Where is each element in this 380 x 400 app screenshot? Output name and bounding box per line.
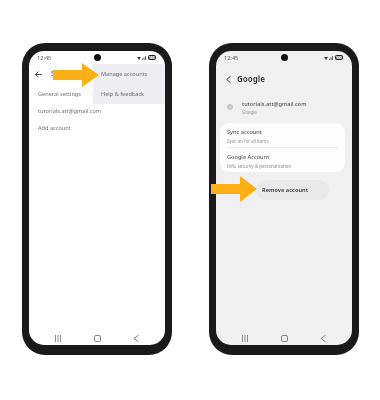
button[interactable]: Recent apps xyxy=(235,332,255,345)
staticText: Remove account xyxy=(262,186,309,194)
staticText: 12:45 xyxy=(37,54,52,62)
button[interactable]: Google Account xyxy=(220,148,345,172)
staticText: 12:45 xyxy=(224,54,239,62)
staticText: General settings xyxy=(38,90,81,98)
staticText: Sync account xyxy=(227,128,263,136)
staticText: Add account xyxy=(38,124,71,132)
staticText: Manage accounts xyxy=(101,70,148,78)
staticText: Info, security & personalisation xyxy=(227,163,292,169)
button[interactable]: Navigate up xyxy=(32,68,44,80)
button[interactable]: Remove account xyxy=(256,180,329,200)
staticText: Google Account xyxy=(227,153,270,161)
button[interactable]: Manage accounts xyxy=(93,64,165,84)
staticText: 100 xyxy=(336,56,342,60)
staticText: tutorials.att@gmail.com xyxy=(38,107,102,115)
button[interactable]: Home xyxy=(274,332,294,345)
button[interactable]: Back xyxy=(313,332,333,345)
button[interactable]: Navigate up xyxy=(223,74,233,84)
staticText: Help & feedback xyxy=(101,90,145,98)
button[interactable]: Help & feedback xyxy=(93,84,165,104)
button[interactable]: Home xyxy=(87,332,107,345)
staticText: Google xyxy=(242,109,257,115)
button[interactable]: Sync account xyxy=(220,123,345,147)
button[interactable]: Add account xyxy=(29,119,165,136)
button[interactable]: General settings xyxy=(29,85,165,102)
staticText: 100 xyxy=(149,56,155,60)
staticText: Sync on for all items xyxy=(227,138,269,144)
button[interactable]: tutorials.att@gmail.com xyxy=(29,102,165,119)
staticText: tutorials.att@gmail.com xyxy=(242,100,307,108)
button[interactable]: Back xyxy=(126,332,146,345)
staticText: Google xyxy=(237,73,266,84)
staticText: Settings xyxy=(51,69,79,79)
button[interactable]: tutorials.att@gmail.com xyxy=(216,96,352,118)
button[interactable]: Recent apps xyxy=(48,332,68,345)
